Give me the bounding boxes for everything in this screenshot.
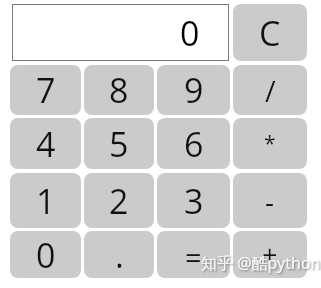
staticText: 7 (36, 67, 56, 113)
staticText: C (259, 10, 281, 56)
button[interactable]: / (233, 65, 307, 115)
staticText: = (185, 237, 202, 276)
button[interactable]: . (84, 231, 154, 278)
staticText: 9 (184, 67, 204, 113)
staticText: . (115, 232, 124, 278)
staticText: 8 (109, 67, 129, 113)
staticText: 3 (184, 178, 204, 224)
staticText: 5 (109, 121, 129, 167)
staticText: + (262, 236, 278, 273)
staticText: - (265, 182, 275, 220)
staticText: * (264, 129, 276, 158)
button[interactable]: = (157, 231, 230, 278)
staticText: 知乎 @酷python (201, 252, 321, 274)
staticText: 0 (180, 10, 200, 56)
button[interactable]: 2 (84, 173, 154, 228)
staticText: 0 (36, 232, 56, 278)
button[interactable]: 4 (10, 118, 81, 169)
button[interactable]: * (233, 118, 307, 169)
button[interactable]: 5 (84, 118, 154, 169)
button[interactable]: C (233, 4, 307, 61)
button[interactable]: 9 (157, 65, 230, 115)
staticText: 4 (36, 121, 56, 167)
button[interactable]: - (233, 173, 307, 228)
button[interactable]: 7 (10, 65, 81, 115)
staticText: 6 (184, 121, 204, 167)
button[interactable]: 8 (84, 65, 154, 115)
staticText: 1 (36, 178, 56, 224)
button[interactable]: 0 (10, 231, 81, 278)
button[interactable]: + (233, 231, 307, 278)
staticText: / (265, 71, 276, 110)
button[interactable]: 6 (157, 118, 230, 169)
button[interactable]: 1 (10, 173, 81, 228)
button[interactable]: 3 (157, 173, 230, 228)
staticText: 2 (109, 178, 129, 224)
